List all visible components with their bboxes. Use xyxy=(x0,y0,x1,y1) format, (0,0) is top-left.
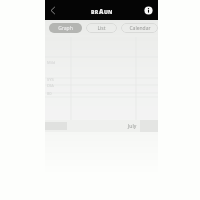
staticText: July xyxy=(128,123,137,130)
button[interactable]: Back xyxy=(46,4,59,17)
staticText: SYS xyxy=(47,77,54,82)
button[interactable]: Calendar xyxy=(121,23,158,33)
staticText: Mild xyxy=(47,60,56,65)
staticText: Calendar xyxy=(129,25,151,32)
button[interactable]: Graph xyxy=(49,23,82,33)
staticText: DIA xyxy=(47,83,54,88)
staticText: A xyxy=(99,7,104,15)
staticText: Graph xyxy=(58,25,73,32)
staticText: List xyxy=(97,25,106,32)
button[interactable]: List xyxy=(86,23,117,33)
staticText: 80 xyxy=(47,91,52,96)
staticText: UN xyxy=(104,8,113,15)
button[interactable]: Info xyxy=(142,4,154,16)
staticText: BR xyxy=(91,8,99,15)
